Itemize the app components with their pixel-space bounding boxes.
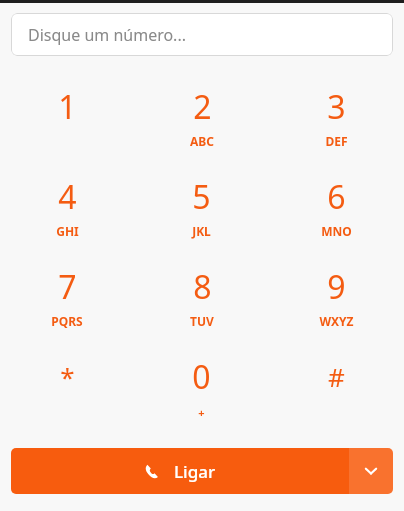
staticText: 1 [58,85,77,129]
staticText: JKL [192,223,211,239]
button[interactable]: 6 [269,161,404,251]
staticText: 2 [193,85,212,129]
button[interactable]: 5 [134,161,269,251]
staticText: 7 [58,265,77,309]
staticText: Ligar [174,460,216,483]
staticText: * [60,359,75,394]
staticText: + [198,405,205,420]
staticText: Disque um número... [28,24,186,46]
staticText: 8 [193,265,212,309]
button[interactable]: * [0,341,134,431]
button[interactable]: 2 [134,71,269,161]
staticText: ABC [190,133,214,149]
button[interactable]: 4 [0,161,134,251]
button[interactable]: 8 [134,251,269,341]
staticText: PQRS [51,313,83,329]
button[interactable]: Disque um número... [11,13,393,56]
staticText: 3 [327,85,346,129]
button[interactable]: 0 [134,341,269,431]
staticText: TUV [190,313,214,329]
button[interactable]: 7 [0,251,134,341]
staticText: GHI [56,223,79,239]
staticText: 0 [192,355,211,399]
button[interactable]: 3 [269,71,404,161]
button[interactable]: More call options [349,448,393,494]
button[interactable]: # [269,341,404,431]
button[interactable]: 1 [0,71,134,161]
button[interactable]: Ligar [11,448,349,494]
staticText: # [328,359,345,394]
staticText: 6 [327,175,346,219]
staticText: 4 [58,175,77,219]
staticText: 5 [192,175,211,219]
staticText: MNO [321,223,352,239]
staticText: WXYZ [319,313,354,329]
staticText: 9 [327,265,346,309]
staticText: DEF [325,133,348,149]
button[interactable]: 9 [269,251,404,341]
